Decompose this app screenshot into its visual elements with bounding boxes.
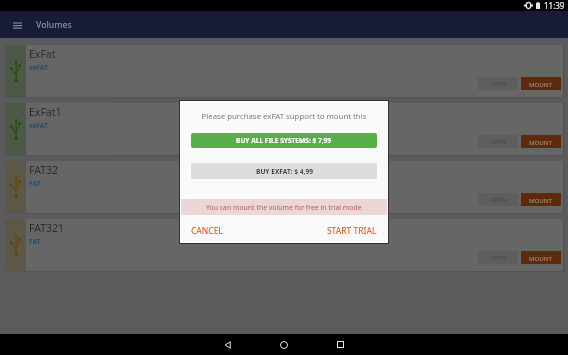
button[interactable]: ExFat1 [5, 103, 563, 155]
staticText: Volumes [36, 19, 72, 31]
staticText: ExFat [29, 47, 56, 61]
staticText: OPEN [490, 196, 507, 204]
staticText: FAT [29, 179, 41, 188]
staticText: OPEN [490, 80, 507, 88]
staticText: MOUNT [529, 138, 553, 146]
staticText: Please purchase exFAT support to mount t… [187, 111, 381, 122]
staticText: ExFat1 [29, 105, 62, 119]
button[interactable]: FAT32 [5, 161, 563, 213]
button[interactable]: MOUNT [521, 251, 561, 264]
button[interactable]: FAT321 [5, 219, 563, 271]
staticText: exFAT [29, 63, 49, 72]
button[interactable]: BUY EXFAT: $ 4,99 [191, 163, 377, 179]
button[interactable]: OPEN [478, 135, 518, 148]
button[interactable]: CANCEL [187, 221, 227, 240]
staticText: MOUNT [529, 80, 553, 88]
staticText: MOUNT [529, 254, 553, 262]
button[interactable]: Back [200, 334, 256, 355]
button[interactable]: Open navigation drawer [8, 15, 27, 34]
button[interactable]: BUY ALL FILE SYSTEMS: $ 7,99 [191, 133, 377, 148]
staticText: START TRIAL [327, 225, 377, 236]
button[interactable]: MOUNT [521, 77, 561, 90]
button[interactable]: Recent apps [312, 334, 368, 355]
button[interactable]: OPEN [478, 77, 518, 90]
button[interactable]: MOUNT [521, 135, 561, 148]
button[interactable]: MOUNT [521, 193, 561, 206]
button[interactable]: ExFat [5, 45, 563, 97]
staticText: FAT321 [29, 221, 65, 235]
staticText: You can mount the volume for free in tri… [206, 203, 362, 212]
staticText: exFAT [29, 121, 49, 130]
button[interactable]: OPEN [478, 193, 518, 206]
staticText: CANCEL [191, 225, 223, 236]
staticText: BUY EXFAT: $ 4,99 [256, 167, 313, 176]
button[interactable]: OPEN [478, 251, 518, 264]
button[interactable]: START TRIAL [323, 221, 381, 240]
staticText: 11:39 [544, 0, 565, 11]
staticText: OPEN [490, 254, 507, 262]
staticText: FAT32 [29, 163, 59, 177]
staticText: FAT [29, 237, 41, 246]
staticText: BUY ALL FILE SYSTEMS: $ 7,99 [236, 136, 332, 145]
staticText: OPEN [490, 138, 507, 146]
button[interactable]: Home [256, 334, 312, 355]
staticText: MOUNT [529, 196, 553, 204]
